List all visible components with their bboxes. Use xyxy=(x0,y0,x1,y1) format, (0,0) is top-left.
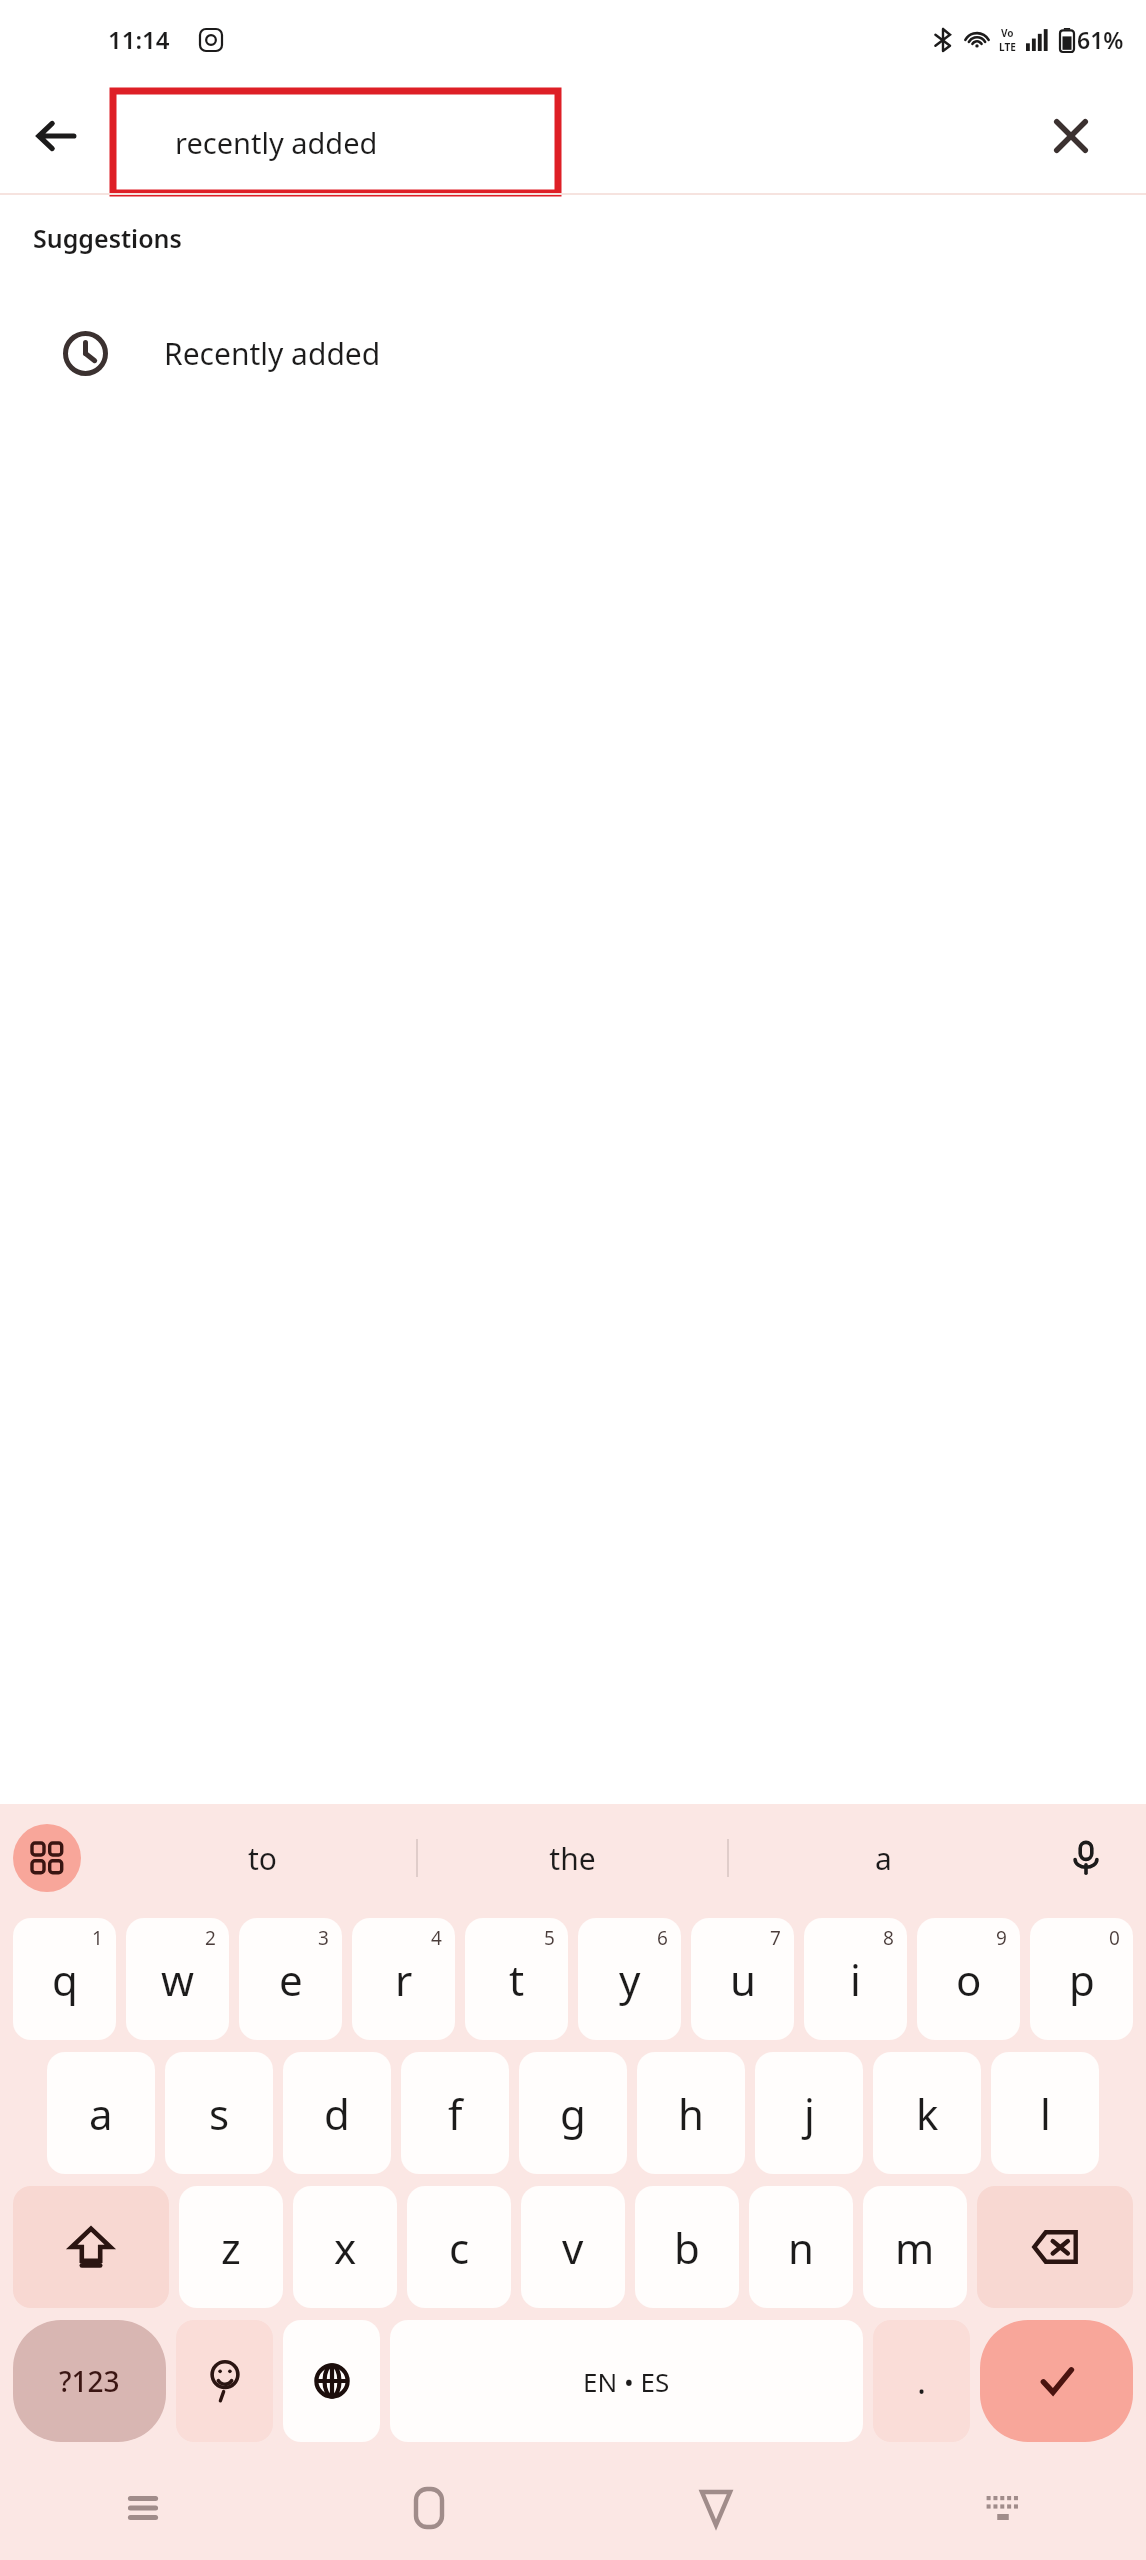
staticText: a xyxy=(89,2085,113,2142)
staticText: 61% xyxy=(1077,24,1124,55)
button[interactable]: to xyxy=(108,1804,416,1912)
staticText: e xyxy=(279,1951,303,2008)
button[interactable]: y xyxy=(578,1918,681,2040)
button[interactable]: t xyxy=(465,1918,568,2040)
staticText: 7 xyxy=(770,1925,781,1951)
button[interactable]: n xyxy=(749,2186,853,2308)
button[interactable]: . xyxy=(873,2320,970,2442)
button[interactable]: r xyxy=(352,1918,455,2040)
staticText: 8 xyxy=(883,1925,894,1951)
staticText: 3 xyxy=(318,1925,329,1951)
staticText: Recently added xyxy=(164,333,381,374)
button[interactable]: Language xyxy=(283,2320,380,2442)
staticText: Suggestions xyxy=(33,221,182,255)
button[interactable]: q xyxy=(13,1918,116,2040)
button[interactable]: c xyxy=(407,2186,511,2308)
button[interactable]: Back xyxy=(22,102,90,170)
button[interactable]: Home xyxy=(286,2456,572,2560)
staticText: x xyxy=(334,2219,357,2276)
staticText: to xyxy=(248,1838,277,1879)
button[interactable]: u xyxy=(691,1918,794,2040)
button[interactable]: the xyxy=(418,1804,727,1912)
button[interactable]: m xyxy=(863,2186,967,2308)
button[interactable]: f xyxy=(401,2052,509,2174)
button[interactable]: i xyxy=(804,1918,907,2040)
staticText: t xyxy=(509,1951,525,2008)
staticText: 5 xyxy=(544,1925,555,1951)
button[interactable]: w xyxy=(126,1918,229,2040)
staticText: 2 xyxy=(205,1925,216,1951)
staticText: recently added xyxy=(175,123,378,162)
button[interactable]: Shift xyxy=(13,2186,169,2308)
button[interactable]: recently added xyxy=(113,91,558,193)
button[interactable]: a xyxy=(729,1804,1038,1912)
staticText: m xyxy=(895,2219,935,2276)
staticText: g xyxy=(560,2085,586,2142)
button[interactable]: a xyxy=(47,2052,155,2174)
staticText: w xyxy=(161,1951,195,2008)
staticText: 4 xyxy=(431,1925,442,1951)
staticText: u xyxy=(730,1951,756,2008)
button[interactable]: x xyxy=(293,2186,397,2308)
button[interactable]: z xyxy=(179,2186,283,2308)
button[interactable]: Recents xyxy=(0,2456,286,2560)
button[interactable]: Hide keyboard xyxy=(859,2456,1146,2560)
staticText: Vo xyxy=(1001,26,1014,40)
button[interactable]: k xyxy=(873,2052,981,2174)
staticText: a xyxy=(875,1838,892,1879)
button[interactable]: ?123 xyxy=(13,2320,166,2442)
staticText: q xyxy=(52,1951,78,2008)
staticText: d xyxy=(324,2085,350,2142)
staticText: ?123 xyxy=(59,2362,120,2400)
staticText: c xyxy=(449,2219,470,2276)
staticText: EN • ES xyxy=(583,2364,670,2399)
staticText: h xyxy=(678,2085,704,2142)
staticText: 1 xyxy=(92,1925,103,1951)
staticText: k xyxy=(916,2085,939,2142)
staticText: l xyxy=(1040,2085,1051,2142)
staticText: 9 xyxy=(996,1925,1007,1951)
button[interactable]: Enter xyxy=(980,2320,1133,2442)
button[interactable]: Toolbar xyxy=(13,1824,81,1892)
button[interactable]: Voice input xyxy=(1056,1828,1116,1888)
staticText: v xyxy=(562,2219,584,2276)
staticText: LTE xyxy=(999,40,1016,54)
staticText: b xyxy=(674,2219,700,2276)
staticText: f xyxy=(448,2085,463,2142)
staticText: s xyxy=(209,2085,230,2142)
button[interactable]: v xyxy=(521,2186,625,2308)
staticText: the xyxy=(549,1838,596,1879)
button[interactable]: Back xyxy=(572,2456,859,2560)
staticText: 11:14 xyxy=(108,23,170,56)
staticText: o xyxy=(956,1951,982,2008)
staticText: r xyxy=(395,1951,413,2008)
button[interactable]: d xyxy=(283,2052,391,2174)
button[interactable]: Recently added xyxy=(0,305,1146,401)
staticText: z xyxy=(221,2219,241,2276)
button[interactable]: b xyxy=(635,2186,739,2308)
button[interactable]: j xyxy=(755,2052,863,2174)
button[interactable]: e xyxy=(239,1918,342,2040)
staticText: j xyxy=(804,2085,815,2142)
button[interactable]: Clear xyxy=(1040,105,1102,167)
button[interactable]: Emoji xyxy=(176,2320,273,2442)
button[interactable]: EN • ES xyxy=(390,2320,863,2442)
button[interactable]: g xyxy=(519,2052,627,2174)
staticText: n xyxy=(788,2219,814,2276)
staticText: 6 xyxy=(657,1925,668,1951)
button[interactable]: Backspace xyxy=(977,2186,1133,2308)
staticText: 0 xyxy=(1109,1925,1120,1951)
button[interactable]: o xyxy=(917,1918,1020,2040)
button[interactable]: l xyxy=(991,2052,1099,2174)
staticText: p xyxy=(1069,1951,1095,2008)
button[interactable]: p xyxy=(1030,1918,1133,2040)
staticText: . xyxy=(917,2358,927,2404)
staticText: y xyxy=(619,1951,641,2008)
button[interactable]: h xyxy=(637,2052,745,2174)
button[interactable]: s xyxy=(165,2052,273,2174)
staticText: i xyxy=(850,1951,861,2008)
